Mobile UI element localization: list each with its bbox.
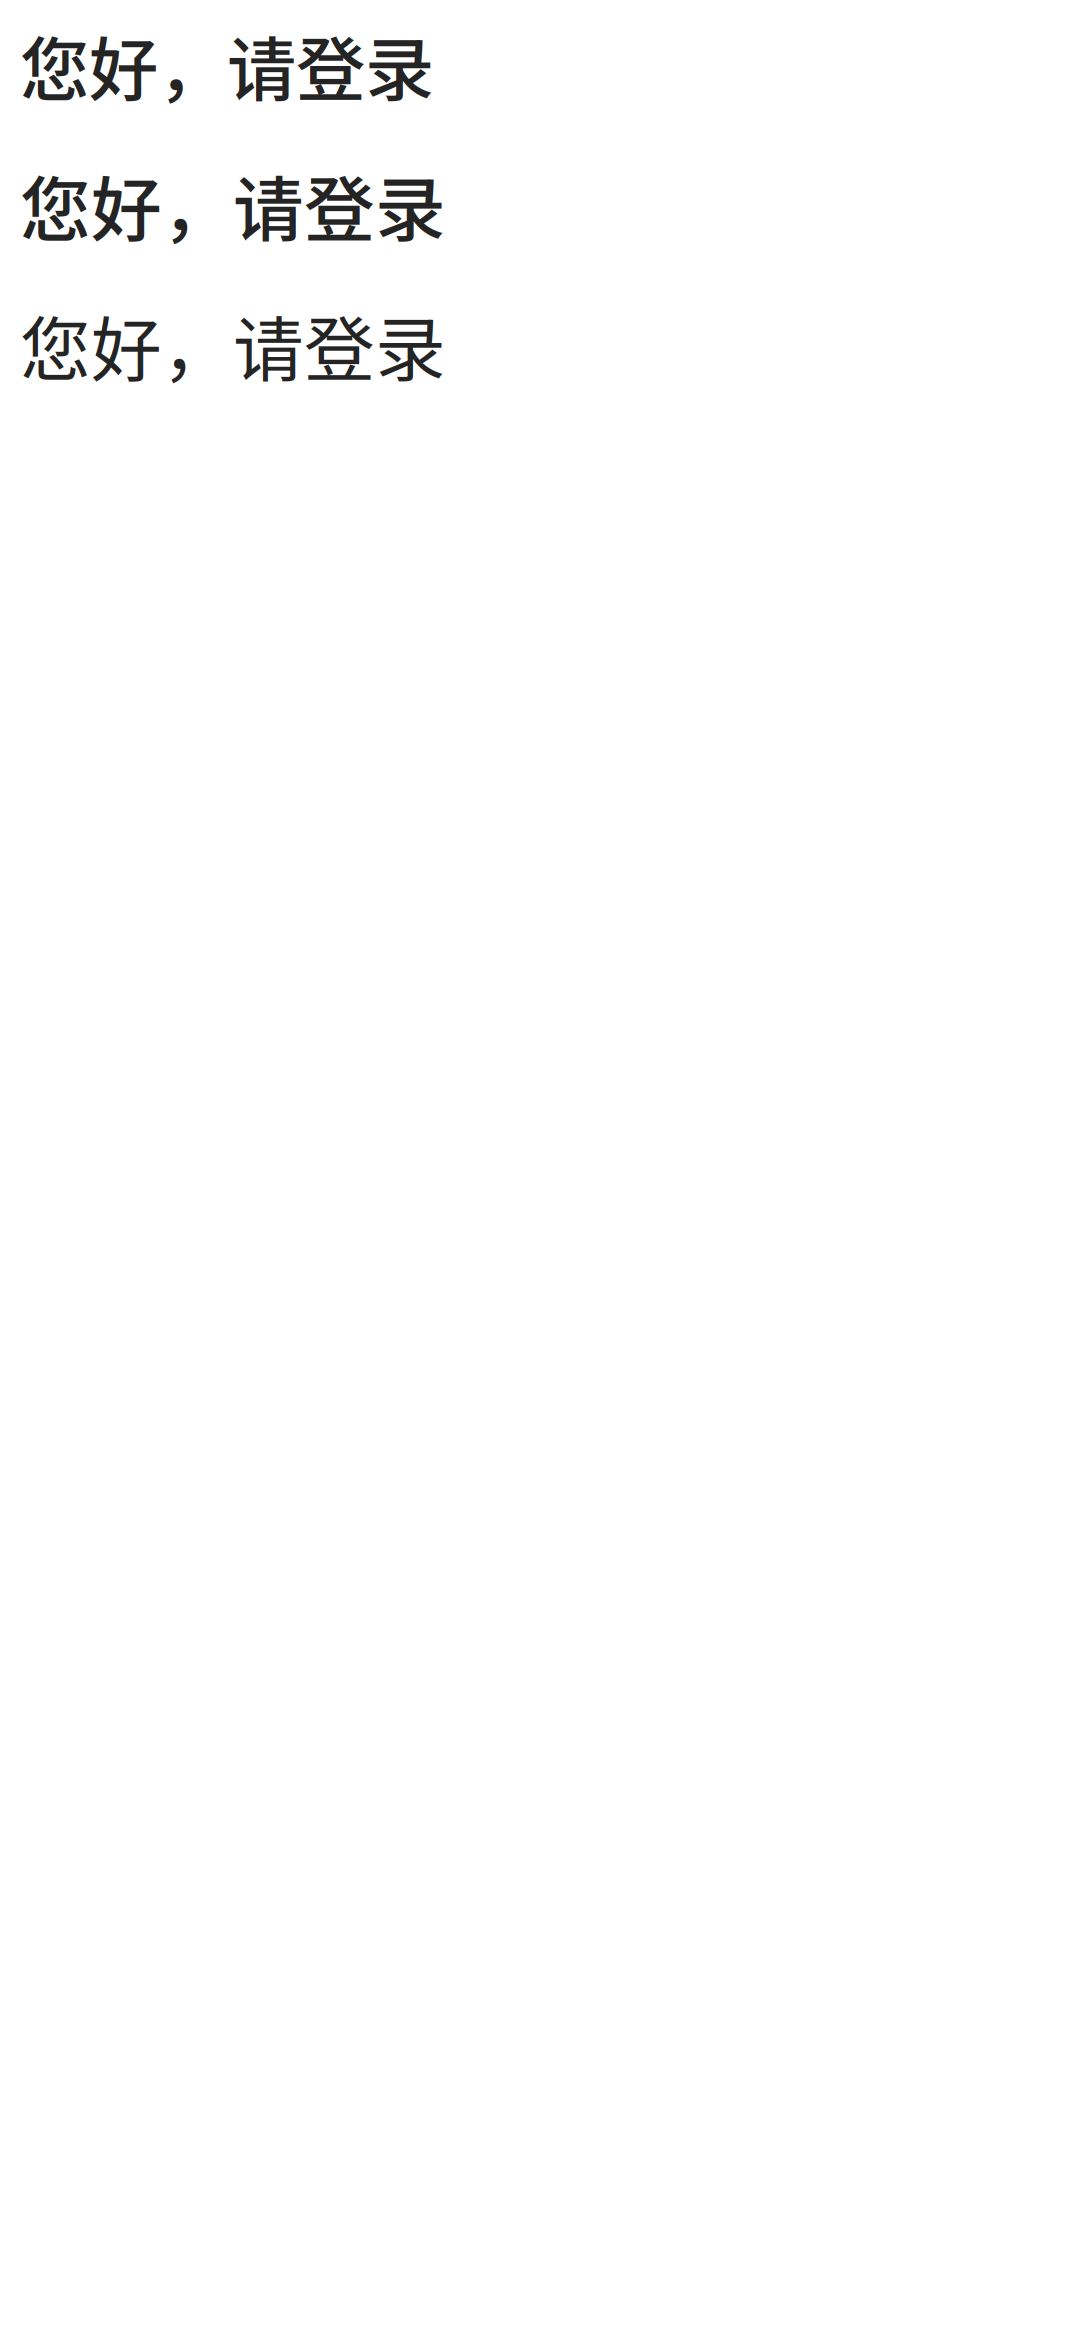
staticText: 您好，请登录 xyxy=(20,154,446,256)
staticText: 您好，请登录 xyxy=(20,294,446,396)
staticText: 您好，请登录 xyxy=(20,15,434,115)
